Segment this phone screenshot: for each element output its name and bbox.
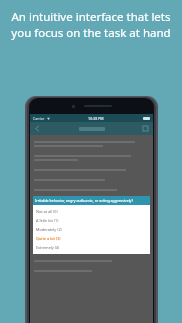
staticText: Moderately (2)	[36, 227, 62, 232]
staticText: Quite a bit (3)	[36, 236, 61, 241]
button[interactable]: Moderately (2)	[33, 225, 150, 234]
button[interactable]: Extremely (4)	[33, 243, 150, 252]
staticText: A little bit (1)	[36, 218, 59, 223]
button[interactable]: Back	[32, 123, 43, 134]
button[interactable]: Irritable behavior, angry outbursts, or …	[33, 196, 150, 205]
staticText: An intuitive interface that lets you foc…	[8, 9, 174, 40]
button[interactable]	[30, 166, 153, 176]
button[interactable]	[30, 138, 153, 152]
button[interactable]: Menu	[140, 123, 151, 134]
button[interactable]	[30, 257, 153, 267]
staticText: 10:38 PM	[88, 116, 104, 121]
button[interactable]: Not at all (0)	[33, 207, 150, 216]
staticText: Irritable behavior, angry outbursts, or …	[35, 198, 134, 203]
staticText: Carrier	[33, 116, 45, 121]
button[interactable]	[30, 152, 153, 166]
staticText: Extremely (4)	[36, 245, 60, 250]
button[interactable]: Quite a bit (3)	[33, 234, 150, 243]
staticText: Not at all (0)	[36, 209, 58, 214]
button[interactable]: A little bit (1)	[33, 216, 150, 225]
button[interactable]	[30, 186, 153, 196]
button[interactable]	[30, 176, 153, 186]
button[interactable]	[30, 267, 153, 277]
